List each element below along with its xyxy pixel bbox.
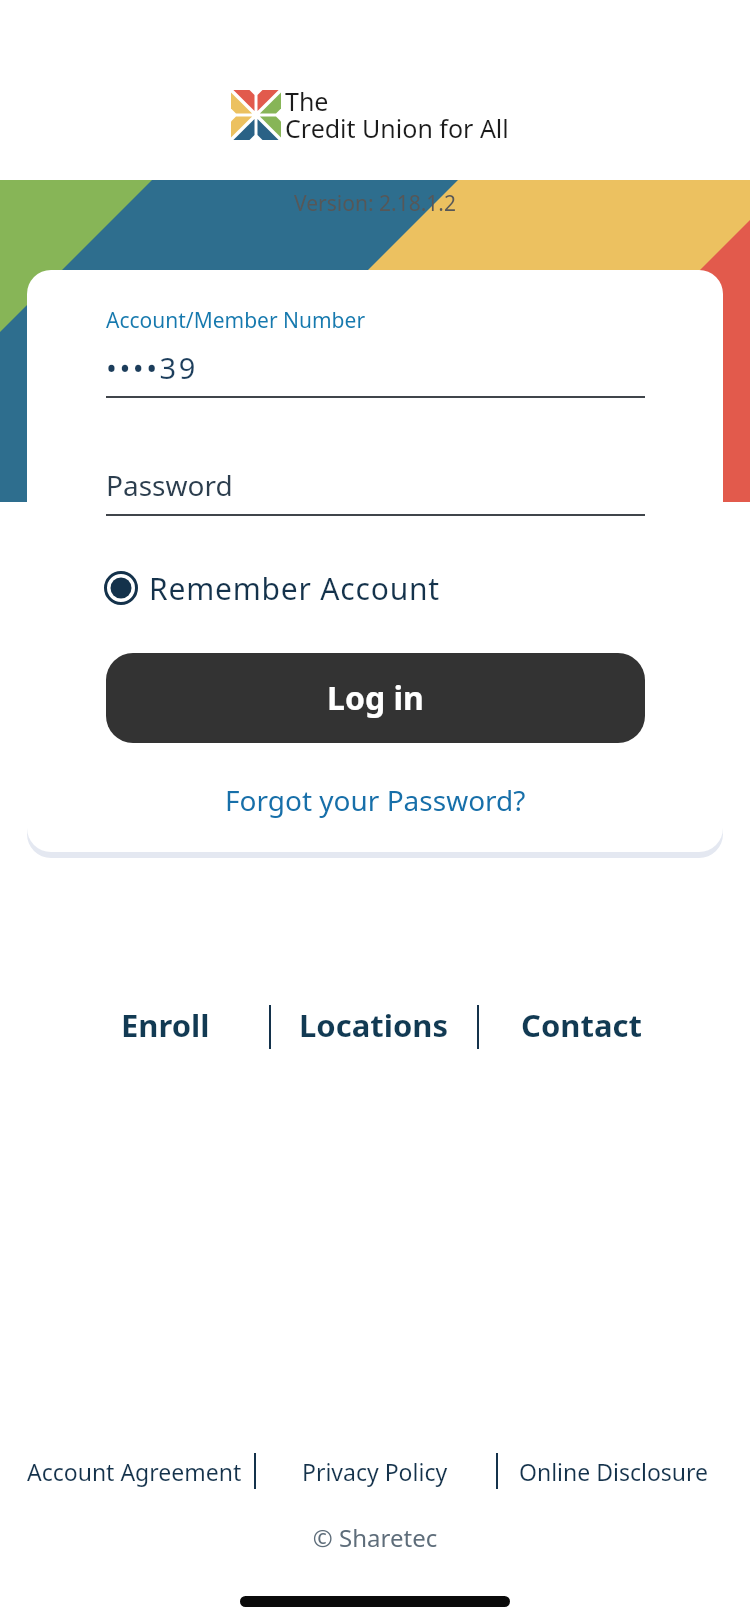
staticText: Version: 2.18.1.2 — [0, 189, 750, 218]
staticText: Password — [106, 466, 233, 504]
button[interactable]: Forgot your Password? — [175, 775, 575, 825]
staticText: Credit Union for All — [285, 111, 509, 145]
staticText: Contact — [521, 1004, 642, 1046]
staticText: Account Agreement — [27, 1456, 242, 1487]
staticText: Online Disclosure — [519, 1456, 709, 1487]
button[interactable]: Locations — [289, 1004, 459, 1046]
button[interactable]: Account Agreement — [15, 1456, 253, 1487]
staticText: Forgot your Password? — [225, 781, 526, 819]
button[interactable]: Account/Member Number — [106, 300, 645, 400]
staticText: ••••39 — [106, 348, 198, 387]
button[interactable]: Password — [106, 450, 645, 516]
button[interactable]: Privacy Policy — [280, 1456, 470, 1487]
button[interactable]: Contact — [506, 1004, 656, 1046]
button[interactable]: Log in — [106, 653, 645, 743]
staticText: Enroll — [121, 1004, 210, 1046]
staticText: Remember Account — [149, 568, 440, 609]
staticText: Privacy Policy — [302, 1456, 448, 1487]
staticText: Account/Member Number — [106, 306, 366, 335]
button[interactable]: Enroll — [95, 1004, 235, 1046]
staticText: Locations — [299, 1004, 449, 1046]
button[interactable]: Remember Account — [102, 565, 442, 611]
staticText: Log in — [327, 676, 424, 720]
button[interactable]: Online Disclosure — [504, 1456, 724, 1487]
staticText: © Sharetec — [0, 1521, 750, 1554]
staticText: The — [285, 84, 329, 118]
